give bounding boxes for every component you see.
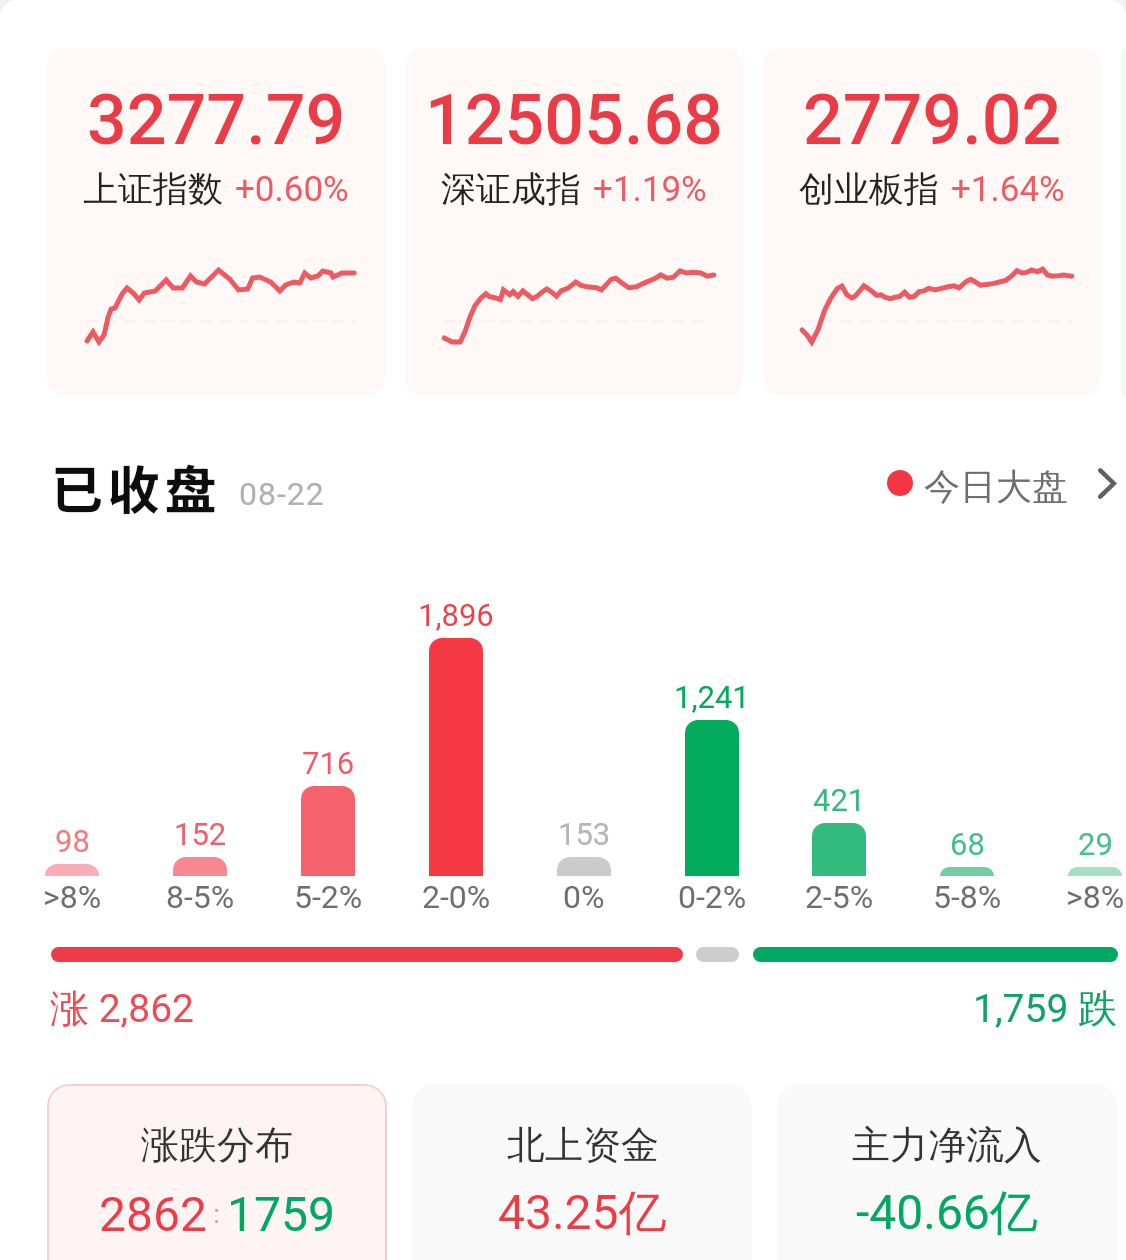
- staticText: 涨跌分布: [141, 1121, 293, 1169]
- button[interactable]: 2779.02: [763, 48, 1101, 396]
- staticText: +1.64%: [951, 169, 1065, 210]
- button[interactable]: 今日大盘: [887, 456, 1119, 501]
- staticText: 已收盘: [51, 449, 222, 524]
- staticText: 5-2%: [294, 878, 363, 916]
- button[interactable]: 北上资金: [412, 1084, 752, 1260]
- button[interactable]: 已收盘: [51, 449, 325, 524]
- staticText: 08-22: [239, 475, 325, 513]
- staticText: 3277.79: [87, 79, 346, 161]
- staticText: +1.19%: [593, 169, 707, 210]
- staticText: 2779.02: [803, 79, 1062, 161]
- staticText: 0-2%: [678, 878, 747, 916]
- staticText: 5-8%: [933, 878, 1002, 916]
- other: 今日大盘 details: [1097, 467, 1117, 500]
- staticText: :: [207, 1199, 227, 1229]
- staticText: 153: [558, 816, 611, 852]
- staticText: 创业板指: [799, 167, 939, 211]
- staticText: 43.25亿: [498, 1183, 667, 1243]
- button[interactable]: 12505.68: [405, 48, 743, 396]
- button[interactable]: 涨跌分布: [47, 1084, 387, 1260]
- staticText: 716: [302, 745, 355, 781]
- staticText: 1,896: [418, 597, 494, 633]
- staticText: +0.60%: [235, 169, 349, 210]
- staticText: 2-5%: [805, 878, 874, 916]
- staticText: >8%: [43, 878, 102, 916]
- staticText: 2862: [99, 1186, 207, 1242]
- staticText: 今日大盘: [924, 464, 1068, 509]
- staticText: 8-5%: [166, 878, 235, 916]
- button[interactable]: 3277.79: [47, 48, 385, 396]
- staticText: 1,759 跌: [973, 984, 1118, 1033]
- staticText: -40.66亿: [856, 1183, 1038, 1243]
- staticText: 2-0%: [422, 878, 491, 916]
- staticText: 上证指数: [83, 167, 223, 211]
- staticText: 主力净流入: [852, 1121, 1042, 1169]
- staticText: 152: [174, 816, 227, 852]
- staticText: 北上资金: [507, 1121, 659, 1169]
- staticText: 1,241: [674, 679, 750, 715]
- staticText: 0%: [563, 878, 605, 916]
- staticText: 68: [950, 826, 985, 862]
- staticText: >8%: [1066, 878, 1125, 916]
- button[interactable]: 主力净流入: [777, 1084, 1117, 1260]
- staticText: 涨 2,862: [50, 984, 195, 1033]
- staticText: 深证成指: [441, 167, 581, 211]
- staticText: 421: [813, 782, 866, 818]
- staticText: 98: [55, 823, 90, 859]
- staticText: 29: [1078, 826, 1113, 862]
- staticText: 1759: [227, 1186, 335, 1242]
- staticText: 12505.68: [425, 79, 724, 161]
